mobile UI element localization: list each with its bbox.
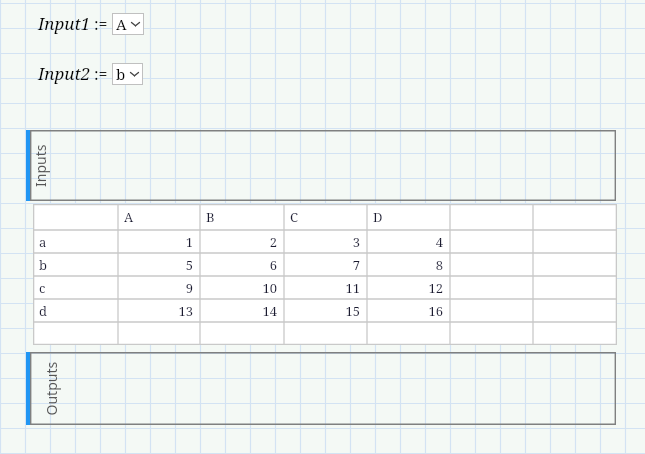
staticText: :=	[94, 63, 108, 85]
staticText: :=	[94, 13, 108, 35]
staticText: 4	[435, 233, 443, 251]
staticText: b	[39, 256, 47, 274]
staticText: Input2	[38, 62, 91, 85]
button[interactable]: 11	[284, 276, 367, 299]
button[interactable]: C	[284, 204, 367, 230]
staticText: 13	[178, 302, 193, 320]
button[interactable]: b	[33, 253, 118, 276]
staticText: D	[373, 208, 383, 226]
staticText: 14	[262, 302, 277, 320]
staticText: 6	[269, 256, 277, 274]
staticText: d	[39, 302, 47, 320]
staticText: 8	[435, 256, 443, 274]
button[interactable]: 16	[367, 299, 450, 322]
staticText: Input1	[38, 12, 91, 35]
staticText: 11	[345, 279, 360, 297]
staticText: Outputs	[7, 361, 26, 415]
staticText: 12	[428, 279, 443, 297]
button[interactable]: 14	[200, 299, 284, 322]
button[interactable]: a	[33, 230, 118, 253]
button[interactable]: B	[200, 204, 284, 230]
staticText: A	[124, 208, 134, 226]
staticText: C	[290, 208, 298, 226]
button[interactable]: 8	[367, 253, 450, 276]
staticText: A	[116, 14, 127, 34]
button[interactable]: 3	[284, 230, 367, 253]
button[interactable]: Select value A	[112, 13, 144, 35]
button[interactable]: c	[33, 276, 118, 299]
button[interactable]: 7	[284, 253, 367, 276]
button[interactable]: A	[118, 204, 200, 230]
button[interactable]: 15	[284, 299, 367, 322]
button[interactable]: 2	[200, 230, 284, 253]
button[interactable]: 6	[200, 253, 284, 276]
staticText: 10	[262, 279, 277, 297]
staticText: a	[39, 233, 47, 251]
button[interactable]: 13	[118, 299, 200, 322]
staticText: B	[206, 208, 215, 226]
staticText: c	[39, 279, 46, 297]
button[interactable]: 9	[118, 276, 200, 299]
button[interactable]: 1	[118, 230, 200, 253]
button[interactable]: D	[367, 204, 450, 230]
staticText: 9	[185, 279, 193, 297]
staticText: b	[116, 64, 126, 84]
button[interactable]: 4	[367, 230, 450, 253]
button[interactable]: 12	[367, 276, 450, 299]
staticText: 1	[185, 233, 193, 251]
button[interactable]: 5	[118, 253, 200, 276]
staticText: Inputs	[7, 144, 26, 187]
button[interactable]: Outputs	[6, 352, 26, 425]
staticText: 7	[352, 256, 360, 274]
button[interactable]: Select value b	[112, 63, 143, 85]
staticText: 3	[352, 233, 360, 251]
staticText: 5	[185, 256, 193, 274]
staticText: 15	[345, 302, 360, 320]
staticText: 16	[428, 302, 443, 320]
button[interactable]: Inputs	[6, 130, 26, 201]
button[interactable]: d	[33, 299, 118, 322]
button[interactable]: 10	[200, 276, 284, 299]
staticText: 2	[269, 233, 277, 251]
